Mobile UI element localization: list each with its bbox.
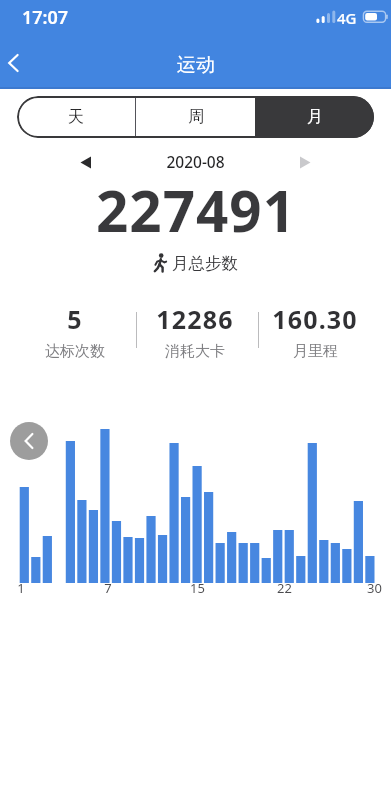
staticText: 12286 — [156, 302, 234, 336]
staticText: 月总步数 — [172, 253, 238, 274]
staticText: 160.30 — [272, 302, 358, 336]
staticText: 周 — [188, 107, 204, 127]
staticText: 消耗大卡 — [165, 342, 225, 360]
staticText: 30 — [367, 579, 382, 597]
button[interactable]: 周 — [136, 96, 255, 138]
staticText: 1 — [17, 579, 25, 597]
staticText: 22 — [277, 579, 292, 597]
staticText: 7 — [104, 579, 112, 597]
staticText: 17:07 — [22, 5, 69, 30]
staticText: 月 — [307, 107, 323, 127]
staticText: 月里程 — [293, 342, 338, 360]
staticText: 运动 — [177, 53, 215, 77]
staticText: 2020-08 — [166, 151, 225, 172]
button[interactable] — [72, 148, 100, 176]
staticText: 5 — [67, 302, 83, 336]
staticText: 达标次数 — [45, 342, 105, 360]
button[interactable]: 天 — [17, 96, 135, 138]
staticText: 4G — [337, 8, 357, 28]
staticText: 227491 — [96, 172, 296, 249]
staticText: 天 — [68, 107, 84, 127]
button[interactable] — [291, 148, 319, 176]
button[interactable] — [0, 44, 40, 84]
button[interactable]: 月 — [255, 96, 374, 138]
staticText: 15 — [190, 579, 205, 597]
button[interactable] — [10, 422, 48, 460]
